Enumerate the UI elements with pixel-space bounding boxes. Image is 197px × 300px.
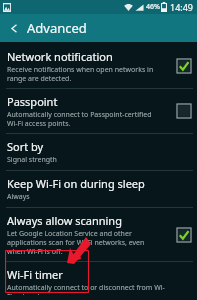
button[interactable]: Always allow scanning [0,208,197,261]
button[interactable]: Unchecked [176,103,192,119]
staticText: Keep Wi-Fi on during sleep [7,176,145,191]
staticText: Receive notifications when open networks… [7,65,154,83]
staticText: Wi-Fi timer [7,267,63,282]
staticText: Advanced [27,19,87,37]
staticText: Network notification [7,49,113,64]
button[interactable]: Passpoint [0,89,197,133]
button[interactable]: Keep Wi-Fi on during sleep [0,171,197,207]
button[interactable]: Back [6,20,22,36]
button[interactable]: Checked [176,58,192,74]
staticText: Let Google Location Service and other ap… [7,229,145,256]
staticText: Automatically connect to or disconnect f… [7,283,165,295]
staticText: Always [7,192,30,202]
staticText: 46% [146,2,160,12]
button[interactable]: Network notification [0,44,197,88]
button[interactable]: Back [0,14,197,42]
staticText: 14:49 [170,1,194,13]
staticText: Automatically connect to Passpoint-certi… [7,110,152,128]
button[interactable]: Checked [176,227,192,243]
staticText: Sort by [7,139,44,154]
staticText: Signal strength [7,155,57,165]
staticText: Passpoint [7,94,58,109]
button[interactable]: Wi-Fi timer [0,262,197,300]
button[interactable]: Sort by [0,134,197,170]
staticText: Always allow scanning [7,213,122,228]
